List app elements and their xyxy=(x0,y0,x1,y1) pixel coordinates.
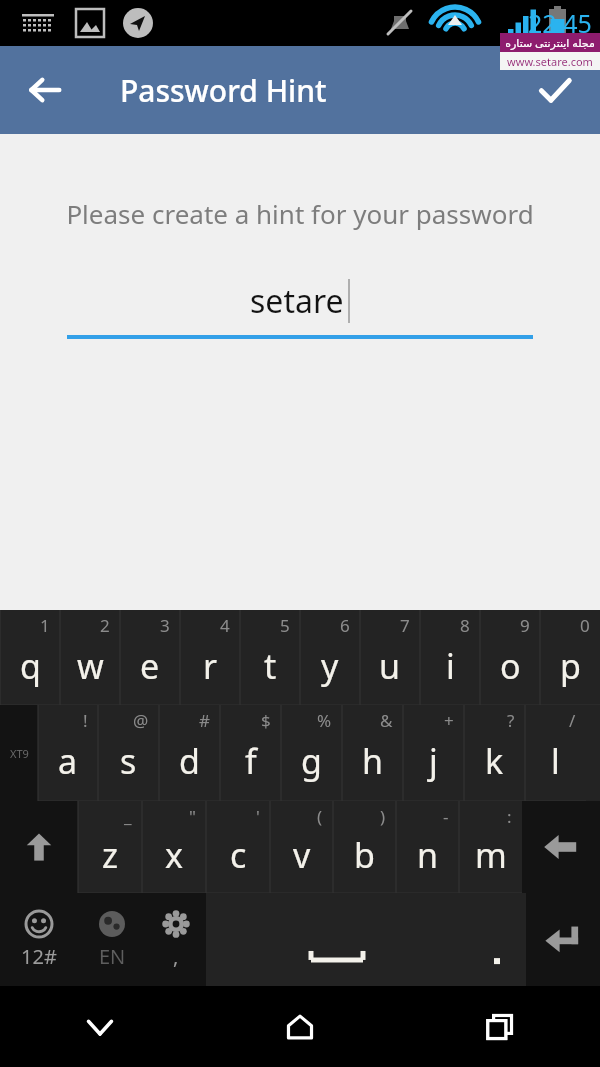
button[interactable]: Enter xyxy=(526,893,600,986)
button[interactable]: Hide keyboard xyxy=(0,986,200,1067)
button[interactable]: _ xyxy=(78,801,142,893)
staticText: @ xyxy=(133,709,149,732)
button[interactable]: ) xyxy=(333,801,396,893)
button[interactable]: 9 xyxy=(480,610,540,705)
staticText: 2 xyxy=(100,614,110,637)
button[interactable]: / xyxy=(525,705,586,801)
staticText: w xyxy=(77,643,104,689)
staticText: $ xyxy=(261,709,271,732)
button[interactable]: % xyxy=(281,705,342,801)
button[interactable]: XT9 xyxy=(0,705,38,801)
button[interactable]: Language xyxy=(78,893,146,986)
staticText: c xyxy=(230,832,247,878)
staticText: y xyxy=(321,643,339,689)
button[interactable] xyxy=(468,893,526,986)
staticText: a xyxy=(58,738,78,784)
staticText: b xyxy=(354,832,375,878)
button[interactable]: - xyxy=(396,801,459,893)
button[interactable]: # xyxy=(159,705,220,801)
staticText: 8 xyxy=(460,614,470,637)
staticText: j xyxy=(429,738,438,784)
button[interactable]: ! xyxy=(38,705,98,801)
staticText: z xyxy=(102,832,118,878)
staticText: # xyxy=(199,709,210,732)
staticText: ! xyxy=(83,709,88,732)
button[interactable]: ( xyxy=(270,801,333,893)
button[interactable]: & xyxy=(342,705,403,801)
button[interactable]: Settings xyxy=(146,893,206,986)
staticText: Password Hint xyxy=(120,70,327,111)
staticText: EN xyxy=(99,943,126,970)
staticText: 9 xyxy=(520,614,530,637)
staticText: g xyxy=(301,738,322,784)
button[interactable]: 7 xyxy=(360,610,420,705)
button[interactable]: Symbols xyxy=(0,893,78,986)
staticText: Please create a hint for your password xyxy=(0,196,600,231)
staticText: / xyxy=(569,709,576,732)
staticText: m xyxy=(475,832,507,878)
staticText: % xyxy=(317,709,332,732)
button[interactable]: Space xyxy=(206,893,468,986)
staticText: 6 xyxy=(340,614,350,637)
button[interactable]: 3 xyxy=(120,610,180,705)
staticText: - xyxy=(443,805,449,828)
staticText: 3 xyxy=(160,614,170,637)
button[interactable]: 5 xyxy=(240,610,300,705)
staticText: , xyxy=(173,943,179,970)
staticText: t xyxy=(264,643,277,689)
staticText: h xyxy=(362,738,384,784)
button[interactable]: setare xyxy=(0,273,600,329)
staticText: o xyxy=(500,643,521,689)
button[interactable]: : xyxy=(459,801,522,893)
staticText: f xyxy=(245,738,257,784)
button[interactable]: 1 xyxy=(0,610,60,705)
staticText: r xyxy=(203,643,218,689)
staticText: x xyxy=(165,832,183,878)
button[interactable]: Backspace xyxy=(522,801,600,893)
staticText: k xyxy=(485,738,504,784)
staticText: 1 xyxy=(40,614,50,637)
button[interactable]: Confirm xyxy=(524,59,586,121)
staticText: p xyxy=(560,643,581,689)
button[interactable]: Recent apps xyxy=(400,986,600,1067)
button[interactable]: " xyxy=(142,801,206,893)
staticText: d xyxy=(179,738,200,784)
staticText: q xyxy=(20,643,41,689)
staticText: e xyxy=(140,643,160,689)
staticText: " xyxy=(189,805,196,828)
staticText: v xyxy=(293,832,311,878)
staticText: _ xyxy=(124,805,132,828)
staticText: ( xyxy=(317,805,323,828)
staticText: n xyxy=(417,832,439,878)
staticText: 4 xyxy=(220,614,230,637)
staticText: XT9 xyxy=(10,746,29,761)
staticText: 22:45 xyxy=(528,6,592,40)
staticText: www.setare.com xyxy=(507,54,593,69)
button[interactable]: 6 xyxy=(300,610,360,705)
staticText: ) xyxy=(380,805,386,828)
button[interactable]: 4 xyxy=(180,610,240,705)
button[interactable]: Shift xyxy=(0,801,78,893)
staticText: l xyxy=(551,738,560,784)
staticText: u xyxy=(379,643,401,689)
staticText: ? xyxy=(507,709,515,732)
staticText: 0 xyxy=(580,614,590,637)
staticText: 5 xyxy=(280,614,290,637)
button[interactable]: Back xyxy=(14,59,76,121)
button[interactable]: ? xyxy=(464,705,525,801)
staticText: مجله اینترنتی ستاره xyxy=(505,35,595,50)
button[interactable]: 0 xyxy=(540,610,600,705)
staticText: 12# xyxy=(21,943,57,970)
staticText: & xyxy=(380,709,393,732)
button[interactable]: 8 xyxy=(420,610,480,705)
staticText: s xyxy=(120,738,137,784)
button[interactable]: Home xyxy=(200,986,400,1067)
staticText: setare xyxy=(250,279,344,323)
staticText: i xyxy=(446,643,455,689)
button[interactable]: @ xyxy=(98,705,159,801)
button[interactable]: 2 xyxy=(60,610,120,705)
button[interactable]: $ xyxy=(220,705,281,801)
staticText: ' xyxy=(256,805,260,828)
button[interactable]: + xyxy=(403,705,464,801)
button[interactable]: ' xyxy=(206,801,270,893)
